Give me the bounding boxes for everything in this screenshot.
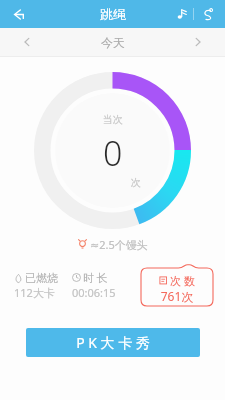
button[interactable]: Music — [169, 0, 193, 28]
staticText: 0 — [103, 130, 123, 176]
staticText: 跳绳 — [100, 6, 126, 22]
button[interactable]: 次 数 — [141, 264, 213, 306]
staticText: 当次 — [103, 113, 123, 126]
staticText: 次 — [131, 176, 141, 189]
staticText: 761次 — [141, 288, 213, 304]
staticText: 次 数 — [170, 273, 195, 288]
staticText: P K 大 卡 秀 — [76, 333, 150, 352]
staticText: ≈2.5个馒头 — [90, 237, 148, 252]
button[interactable]: Next day — [171, 28, 225, 56]
button[interactable]: 时 长 — [72, 270, 141, 300]
staticText: 00:06:15 — [72, 285, 116, 300]
button[interactable]: 今天 — [101, 35, 125, 50]
button[interactable]: Back — [0, 0, 36, 28]
staticText: 112大卡 — [14, 285, 55, 300]
button[interactable]: Previous day — [0, 28, 54, 56]
button[interactable]: 已燃烧 — [14, 271, 72, 300]
button[interactable]: P K 大 卡 秀 — [26, 328, 200, 357]
button[interactable]: Share — [194, 0, 220, 28]
staticText: 已燃烧 — [25, 271, 58, 285]
staticText: 时 长 — [83, 270, 108, 285]
